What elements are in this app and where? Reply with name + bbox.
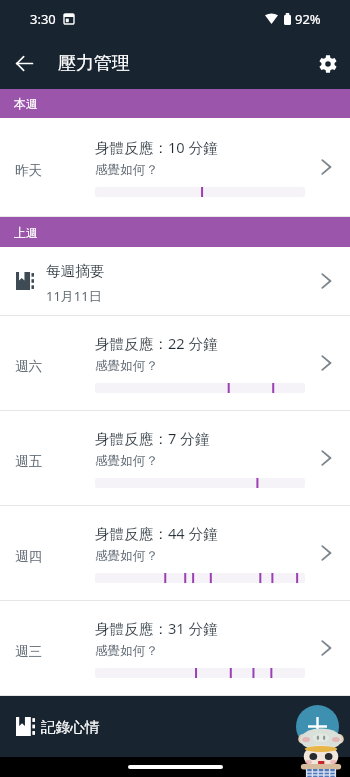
staticText: 每週摘要 bbox=[46, 262, 105, 280]
staticText: 壓力管理 bbox=[58, 52, 130, 75]
staticText: 身體反應：7 分鐘 bbox=[95, 428, 210, 448]
staticText: 週四 bbox=[15, 548, 42, 565]
button[interactable]: Add bbox=[296, 705, 339, 748]
staticText: 11月11日 bbox=[46, 287, 102, 305]
button[interactable]: 週五 bbox=[0, 411, 350, 506]
button[interactable]: Back bbox=[0, 38, 48, 89]
staticText: 週三 bbox=[15, 643, 42, 660]
staticText: 記錄心情 bbox=[41, 718, 100, 736]
staticText: 身體反應：22 分鐘 bbox=[95, 333, 218, 353]
staticText: 身體反應：44 分鐘 bbox=[95, 523, 218, 543]
staticText: 上週 bbox=[14, 225, 38, 240]
staticText: 身體反應：10 分鐘 bbox=[95, 137, 218, 157]
staticText: 感覺如何？ bbox=[95, 162, 158, 178]
staticText: 感覺如何？ bbox=[95, 453, 158, 469]
staticText: 身體反應：31 分鐘 bbox=[95, 618, 218, 638]
staticText: 感覺如何？ bbox=[95, 643, 158, 659]
staticText: 92% bbox=[295, 10, 321, 28]
staticText: 昨天 bbox=[15, 162, 42, 179]
staticText: 3:30 bbox=[30, 10, 56, 28]
staticText: 週五 bbox=[15, 453, 42, 470]
button[interactable]: 記錄心情 bbox=[0, 696, 350, 757]
button[interactable]: 週四 bbox=[0, 506, 350, 601]
staticText: 本週 bbox=[14, 96, 38, 111]
button[interactable]: Settings bbox=[306, 38, 350, 89]
staticText: 感覺如何？ bbox=[95, 358, 158, 374]
button[interactable]: 週六 bbox=[0, 316, 350, 411]
button[interactable]: 每週摘要 bbox=[0, 247, 350, 316]
staticText: 感覺如何？ bbox=[95, 548, 158, 564]
button[interactable]: 週三 bbox=[0, 601, 350, 696]
staticText: 週六 bbox=[15, 358, 42, 375]
button[interactable]: 昨天 bbox=[0, 118, 350, 217]
